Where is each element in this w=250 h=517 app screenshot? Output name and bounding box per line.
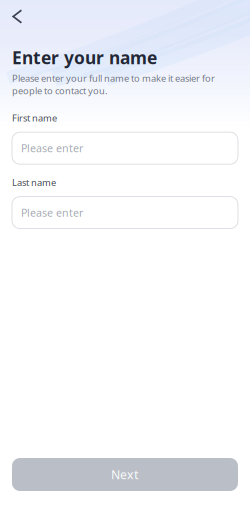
staticText: Next	[111, 466, 139, 482]
staticText: First name	[12, 112, 57, 124]
button[interactable]: Please enter	[12, 197, 238, 229]
button[interactable]: Back	[12, 0, 52, 30]
staticText: Please enter	[21, 205, 83, 220]
button[interactable]: Next	[12, 458, 238, 491]
staticText: Enter your name	[12, 46, 157, 69]
staticText: Please enter your full name to make it e…	[12, 72, 215, 97]
staticText: Last name	[12, 176, 56, 189]
button[interactable]: Please enter	[12, 132, 238, 164]
staticText: Please enter	[21, 141, 83, 155]
